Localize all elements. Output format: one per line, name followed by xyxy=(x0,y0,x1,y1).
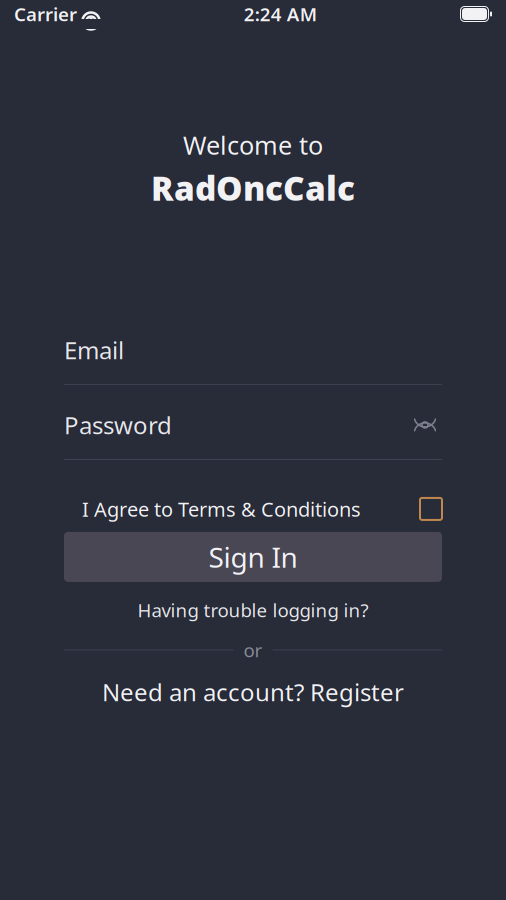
staticText: Carrier xyxy=(14,2,77,26)
button[interactable]: Having trouble logging in? xyxy=(64,598,442,622)
staticText: Email xyxy=(64,334,124,366)
button[interactable]: Sign In xyxy=(64,532,442,582)
staticText: or xyxy=(243,637,262,662)
button[interactable]: Need an account? Register xyxy=(64,678,442,706)
button[interactable]: I Agree to Terms & Conditions xyxy=(0,492,506,526)
staticText: Having trouble logging in? xyxy=(137,597,368,622)
staticText: 2:24 AM xyxy=(244,2,317,26)
staticText: Need an account? Register xyxy=(102,676,404,708)
staticText: Welcome to xyxy=(183,128,323,162)
button[interactable]: Show password xyxy=(408,411,442,439)
staticText: Sign In xyxy=(208,538,297,575)
staticText: I Agree to Terms & Conditions xyxy=(82,496,361,522)
staticText: RadOncCalc xyxy=(151,166,355,210)
staticText: Password xyxy=(64,409,172,441)
